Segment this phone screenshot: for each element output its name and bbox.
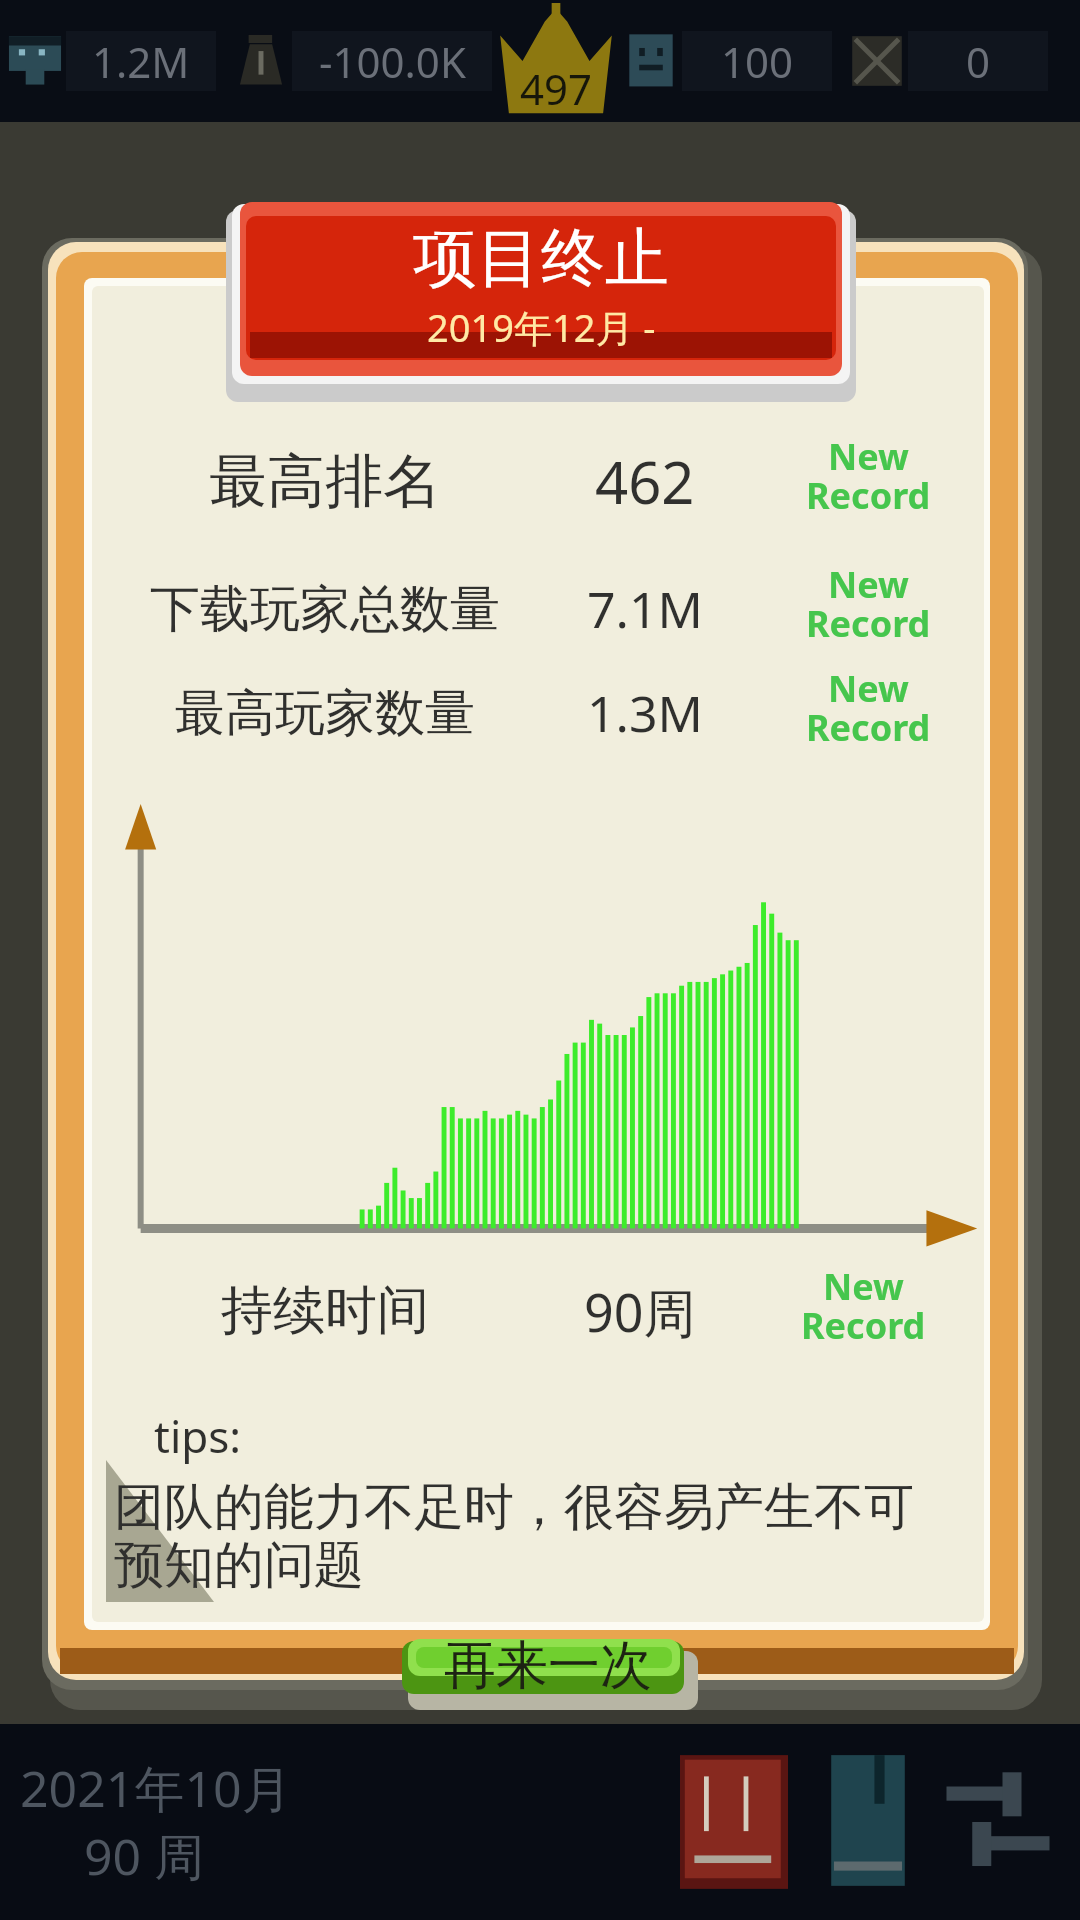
other: resource — [230, 30, 292, 92]
staticText: 团队的能力不足时，很容易产生不可预知的问题 — [114, 1476, 942, 1597]
staticText: Record — [801, 1301, 926, 1350]
staticText: New — [828, 432, 909, 481]
staticText: New — [828, 560, 909, 609]
button[interactable]: resource — [230, 28, 492, 94]
other: resource — [4, 30, 66, 92]
staticText: 1.3M — [587, 679, 703, 747]
button[interactable]: Settings — [942, 1751, 1054, 1893]
button[interactable]: 再来一次 — [398, 1637, 698, 1710]
staticText: 最高玩家数量 — [175, 682, 475, 745]
staticText: New — [828, 664, 909, 713]
staticText: Record — [806, 703, 931, 752]
staticText: Record — [806, 599, 931, 648]
staticText: 90周 — [584, 1276, 696, 1347]
staticText: 90 周 — [84, 1822, 205, 1890]
staticText: New — [823, 1262, 904, 1311]
staticText: 462 — [595, 442, 695, 521]
staticText: -100.0K — [319, 33, 466, 90]
staticText: 最高排名 — [209, 445, 441, 518]
button[interactable]: resource — [4, 28, 216, 94]
button[interactable]: 项目终止 — [226, 202, 856, 402]
staticText: Record — [806, 471, 931, 520]
staticText: 持续时间 — [221, 1278, 429, 1344]
other: resource — [620, 30, 682, 92]
staticText: 497 — [520, 60, 593, 117]
staticText: 100 — [721, 33, 794, 90]
staticText: 0 — [966, 33, 991, 90]
staticText: 1.2M — [92, 33, 190, 90]
staticText: 2019年12月 - — [427, 301, 656, 353]
staticText: 下载玩家总数量 — [150, 578, 500, 641]
button[interactable]: resource — [846, 28, 1048, 94]
staticText: 7.1M — [587, 575, 703, 643]
staticText: 项目终止 — [413, 218, 669, 299]
button[interactable]: Book — [822, 1746, 914, 1898]
button[interactable]: resource — [620, 28, 832, 94]
staticText: tips: — [154, 1406, 242, 1466]
button[interactable]: Shop — [674, 1746, 794, 1898]
staticText: 再来一次 — [444, 1633, 652, 1699]
button[interactable]: Rank — [494, 3, 618, 119]
other: resource — [846, 30, 908, 92]
staticText: 2021年10月 — [20, 1754, 292, 1822]
